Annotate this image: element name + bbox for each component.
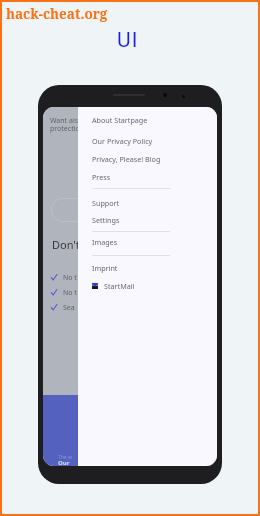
staticText: Imprint xyxy=(92,263,118,273)
staticText: No t xyxy=(63,288,77,296)
button[interactable]: About Startpage xyxy=(92,115,217,125)
staticText: Images xyxy=(92,237,118,247)
staticText: Our xyxy=(58,459,70,466)
staticText: Support xyxy=(92,198,120,208)
staticText: About Startpage xyxy=(92,115,148,125)
button[interactable]: StartMail xyxy=(92,281,152,291)
staticText: Sea xyxy=(63,303,75,311)
staticText: Press xyxy=(92,172,111,182)
staticText: No t xyxy=(63,273,77,281)
button[interactable]: Images xyxy=(92,237,217,247)
staticText: Settings xyxy=(92,215,120,225)
staticText: The w xyxy=(58,454,72,461)
button[interactable]: Press xyxy=(92,172,217,182)
staticText: StartMail xyxy=(104,281,135,291)
button[interactable]: Settings xyxy=(92,215,217,225)
staticText: Privacy, Please! Blog xyxy=(92,154,161,164)
button[interactable]: Imprint xyxy=(92,263,217,273)
staticText: Our Privacy Policy xyxy=(92,136,153,146)
staticText: Don't xyxy=(52,237,80,252)
staticText: Want also protection xyxy=(50,116,85,133)
staticText: hack-cheat.org xyxy=(6,5,108,23)
button[interactable]: Privacy, Please! Blog xyxy=(92,154,217,164)
button[interactable]: Our Privacy Policy xyxy=(92,136,217,146)
button[interactable]: Support xyxy=(92,198,217,208)
staticText: UI xyxy=(117,28,139,53)
